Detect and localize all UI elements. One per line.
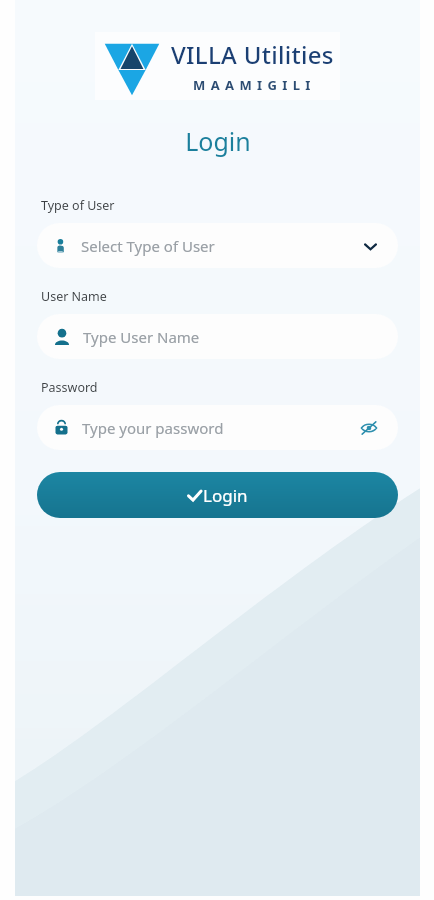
staticText: Login	[203, 484, 248, 507]
button[interactable]: Select Type of User	[37, 223, 398, 268]
staticText: M A A M I G I L I	[193, 76, 312, 94]
staticText: VILLA Utilities	[171, 38, 334, 71]
staticText: Type of User	[41, 197, 115, 214]
staticText: Type User Name	[83, 327, 380, 347]
staticText: Password	[41, 379, 98, 396]
button[interactable]: Type User Name	[37, 314, 398, 359]
staticText: User Name	[41, 288, 107, 305]
button[interactable]: Open dropdown	[360, 236, 380, 256]
staticText: Type your password	[82, 418, 358, 438]
button[interactable]: Show password	[358, 417, 380, 439]
staticText: Select Type of User	[81, 236, 360, 256]
staticText: Login	[185, 124, 251, 158]
button[interactable]: Type your password	[37, 405, 398, 450]
button[interactable]: Login	[37, 472, 398, 518]
